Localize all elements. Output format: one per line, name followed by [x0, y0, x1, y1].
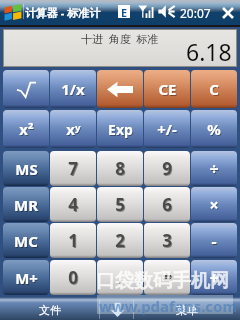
- button[interactable]: +: [191, 260, 237, 295]
- button[interactable]: Exp: [97, 110, 143, 148]
- staticText: %: [207, 119, 221, 139]
- staticText: 1: [69, 230, 79, 253]
- button[interactable]: Square root: [3, 70, 49, 108]
- staticText: M+: [16, 269, 39, 289]
- button[interactable]: 6: [144, 187, 190, 222]
- button[interactable]: x²: [3, 110, 49, 148]
- button[interactable]: -: [191, 223, 237, 258]
- staticText: 十进 角度 标准: [81, 31, 159, 46]
- staticText: 0: [69, 267, 79, 290]
- button[interactable]: 5: [97, 187, 143, 222]
- staticText: 6.18: [186, 36, 232, 67]
- staticText: www.pdafans.com: [99, 296, 238, 316]
- staticText: CE: [158, 79, 177, 99]
- staticText: %: [208, 120, 222, 140]
- staticText: +/-: [158, 120, 178, 140]
- staticText: +: [210, 268, 220, 290]
- staticText: 菜单: [176, 303, 198, 317]
- staticText: 3: [163, 230, 173, 253]
- staticText: 1/x: [61, 79, 85, 99]
- staticText: MC: [14, 231, 38, 251]
- button[interactable]: ×: [191, 187, 237, 222]
- button[interactable]: C: [191, 70, 237, 108]
- staticText: =: [163, 267, 173, 290]
- staticText: ÷: [209, 158, 219, 180]
- button[interactable]: M+: [3, 260, 49, 295]
- staticText: =: [162, 266, 172, 289]
- button[interactable]: =: [144, 260, 190, 295]
- staticText: 8: [116, 158, 126, 181]
- button[interactable]: %: [191, 110, 237, 148]
- button[interactable]: MS: [3, 151, 49, 186]
- staticText: 0: [68, 266, 78, 289]
- button[interactable]: .: [97, 260, 143, 295]
- button[interactable]: +/-: [144, 110, 190, 148]
- button[interactable]: Start: [3, 3, 22, 20]
- button[interactable]: 9: [144, 151, 190, 186]
- staticText: x²: [19, 119, 34, 139]
- button[interactable]: 8: [97, 151, 143, 186]
- staticText: 3: [162, 229, 172, 252]
- staticText: MC: [15, 232, 39, 252]
- staticText: MR: [14, 195, 38, 215]
- staticText: ×: [210, 195, 220, 217]
- staticText: .: [119, 267, 124, 290]
- staticText: 7: [68, 157, 78, 180]
- button[interactable]: Backspace: [97, 70, 143, 108]
- button[interactable]: Close: [219, 4, 236, 21]
- staticText: M+: [15, 268, 38, 288]
- staticText: MS: [16, 160, 39, 180]
- button[interactable]: Input panel: [100, 299, 134, 320]
- button[interactable]: MC: [3, 223, 49, 258]
- staticText: 2: [115, 229, 125, 252]
- staticText: ×: [209, 194, 219, 216]
- button[interactable]: 7: [50, 151, 96, 186]
- staticText: MS: [15, 159, 38, 179]
- staticText: +/-: [157, 119, 177, 139]
- button[interactable]: CE: [144, 70, 190, 108]
- staticText: 7: [69, 158, 79, 181]
- staticText: 20:07: [180, 5, 211, 21]
- staticText: E: [121, 5, 128, 18]
- staticText: x²: [20, 120, 35, 140]
- staticText: Exp: [109, 121, 134, 140]
- staticText: 1/x: [62, 80, 86, 100]
- staticText: -: [212, 231, 218, 253]
- staticText: 6: [163, 194, 173, 217]
- staticText: ÷: [210, 159, 220, 181]
- button[interactable]: MR: [3, 187, 49, 222]
- button[interactable]: ÷: [191, 151, 237, 186]
- staticText: 6: [162, 193, 172, 216]
- staticText: 5: [116, 194, 126, 217]
- button[interactable]: 4: [50, 187, 96, 222]
- staticText: xʸ: [66, 119, 81, 139]
- staticText: 5: [115, 193, 125, 216]
- button[interactable]: 1/x: [50, 70, 96, 108]
- staticText: Exp: [108, 120, 133, 139]
- staticText: 计算器 - 标准计: [25, 5, 101, 20]
- staticText: .: [118, 266, 123, 289]
- button[interactable]: 1: [50, 223, 96, 258]
- staticText: 2: [116, 230, 126, 253]
- staticText: 8: [115, 157, 125, 180]
- staticText: 4: [69, 194, 79, 217]
- staticText: C: [210, 80, 220, 100]
- button[interactable]: 文件: [0, 299, 99, 320]
- staticText: CE: [159, 80, 178, 100]
- staticText: 口袋数码手机网: [96, 269, 229, 293]
- button[interactable]: 2: [97, 223, 143, 258]
- staticText: MR: [15, 196, 39, 216]
- staticText: C: [209, 79, 219, 99]
- staticText: 9: [163, 158, 173, 181]
- staticText: -: [211, 230, 217, 252]
- button[interactable]: 3: [144, 223, 190, 258]
- staticText: 4: [68, 193, 78, 216]
- button[interactable]: 0: [50, 260, 96, 295]
- staticText: 1: [68, 229, 78, 252]
- staticText: +: [209, 267, 219, 289]
- staticText: 文件: [39, 303, 61, 317]
- button[interactable]: 菜单: [134, 299, 240, 320]
- staticText: 9: [162, 157, 172, 180]
- button[interactable]: xʸ: [50, 110, 96, 148]
- staticText: xʸ: [67, 120, 82, 140]
